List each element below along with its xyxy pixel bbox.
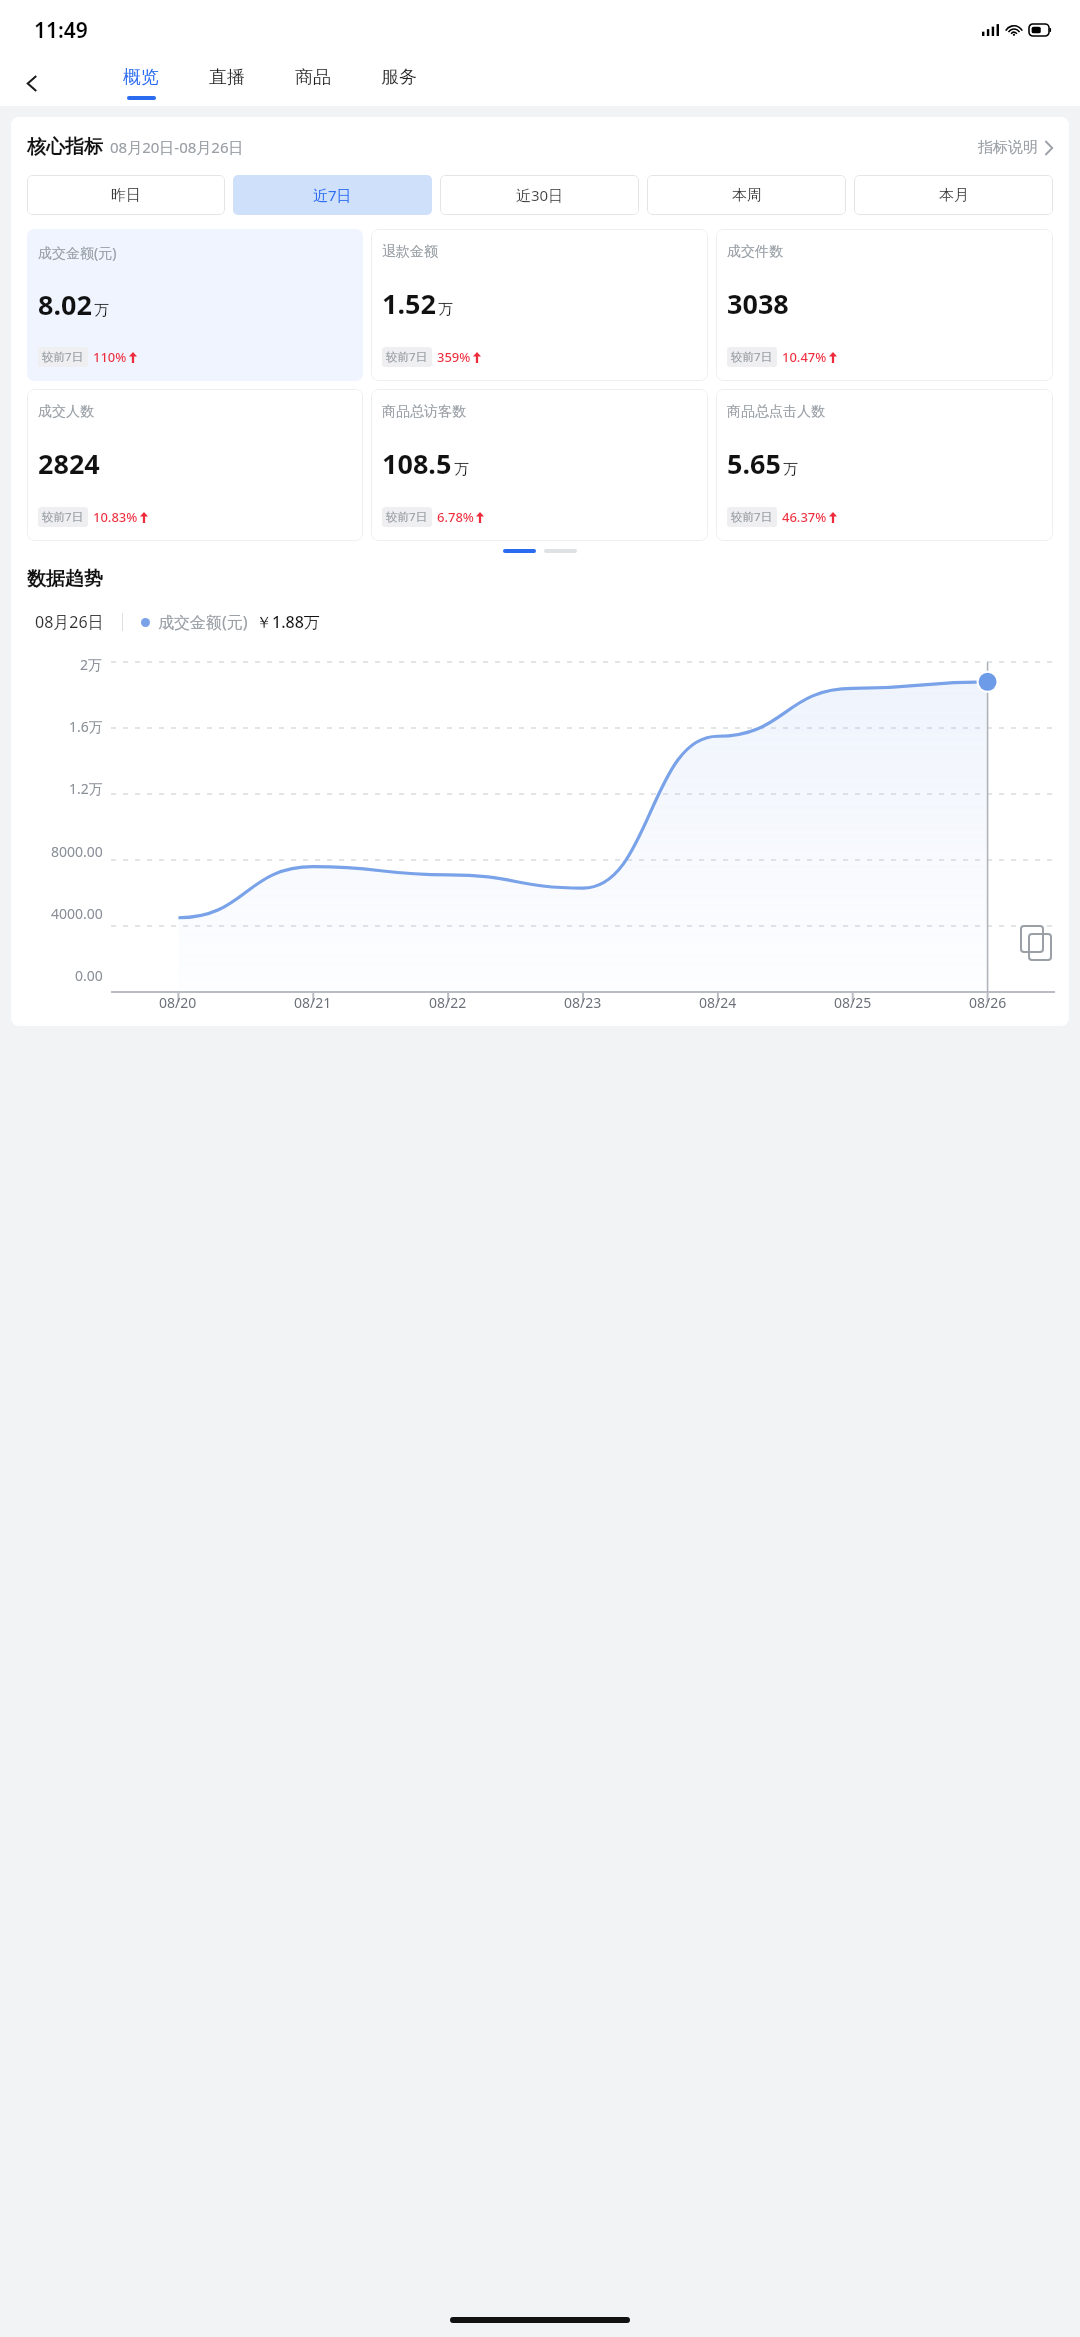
button[interactable]: 退款金额: [371, 229, 708, 381]
staticText: 万: [783, 460, 798, 479]
staticText: ￥1.88万: [256, 611, 320, 633]
staticText: 08月20日-08月26日: [110, 137, 244, 157]
staticText: 10.47%: [782, 348, 827, 366]
staticText: 较前7日: [731, 349, 773, 365]
staticText: 8.02: [38, 286, 92, 323]
staticText: 概览: [123, 66, 159, 89]
staticText: 46.37%: [782, 508, 827, 526]
staticText: 指标说明: [978, 138, 1038, 157]
button[interactable]: 商品总点击人数: [716, 389, 1053, 541]
staticText: 08/23: [564, 993, 602, 1012]
staticText: 08/24: [699, 993, 737, 1012]
button[interactable]: 服务: [356, 60, 442, 106]
staticText: 108.5: [382, 445, 452, 482]
staticText: 较前7日: [386, 509, 428, 525]
staticText: 08/20: [159, 993, 197, 1012]
staticText: 2万: [80, 655, 103, 674]
staticText: 110%: [93, 348, 127, 366]
staticText: 359%: [437, 348, 471, 366]
staticText: 08月26日: [35, 611, 104, 633]
staticText: 08/26: [969, 993, 1007, 1012]
staticText: 退款金额: [382, 243, 438, 261]
staticText: 核心指标: [27, 135, 103, 159]
button[interactable]: 本周: [647, 175, 846, 215]
button[interactable]: 指标说明: [978, 138, 1053, 157]
staticText: 1.2万: [69, 779, 103, 798]
button[interactable]: 直播: [184, 60, 270, 106]
staticText: 数据趋势: [27, 567, 103, 591]
staticText: 11:49: [34, 16, 88, 45]
staticText: 08/22: [429, 993, 467, 1012]
staticText: 昨日: [111, 186, 141, 205]
button[interactable]: 本月: [854, 175, 1053, 215]
staticText: 8000.00: [51, 842, 103, 861]
staticText: 较前7日: [386, 349, 428, 365]
staticText: 商品: [295, 66, 331, 89]
staticText: 商品总点击人数: [727, 403, 825, 421]
staticText: 服务: [381, 66, 417, 89]
staticText: 较前7日: [42, 509, 84, 525]
button[interactable]: 昨日: [27, 175, 225, 215]
staticText: 成交金额(元): [38, 243, 117, 262]
staticText: 3038: [727, 285, 789, 322]
staticText: 1.6万: [69, 717, 103, 736]
staticText: 08/21: [294, 993, 332, 1012]
staticText: 万: [94, 301, 109, 320]
staticText: 本周: [732, 186, 762, 205]
staticText: 万: [438, 300, 453, 319]
staticText: 万: [454, 460, 469, 479]
staticText: 商品总访客数: [382, 403, 466, 421]
staticText: 1.52: [382, 285, 436, 322]
button[interactable]: 近7日: [233, 175, 432, 215]
staticText: 较前7日: [42, 349, 84, 365]
button[interactable]: 成交件数: [716, 229, 1053, 381]
staticText: 较前7日: [731, 509, 773, 525]
staticText: 2824: [38, 445, 100, 482]
staticText: 近7日: [313, 185, 352, 205]
button[interactable]: 成交金额(元): [27, 229, 363, 381]
staticText: 近30日: [516, 185, 564, 205]
staticText: 6.78%: [437, 508, 474, 526]
staticText: 0.00: [75, 966, 103, 985]
staticText: 本月: [939, 186, 969, 205]
staticText: 4000.00: [51, 904, 103, 923]
staticText: 成交人数: [38, 403, 94, 421]
staticText: 10.83%: [93, 508, 138, 526]
staticText: 5.65: [727, 445, 781, 482]
staticText: 直播: [209, 66, 245, 89]
button[interactable]: 近30日: [440, 175, 639, 215]
button[interactable]: Back: [8, 60, 56, 106]
staticText: 08/25: [834, 993, 872, 1012]
button[interactable]: 成交人数: [27, 389, 363, 541]
button[interactable]: 商品总访客数: [371, 389, 708, 541]
button[interactable]: 概览: [98, 60, 184, 106]
button[interactable]: 商品: [270, 60, 356, 106]
staticText: 成交件数: [727, 243, 783, 261]
staticText: 成交金额(元): [158, 611, 248, 633]
